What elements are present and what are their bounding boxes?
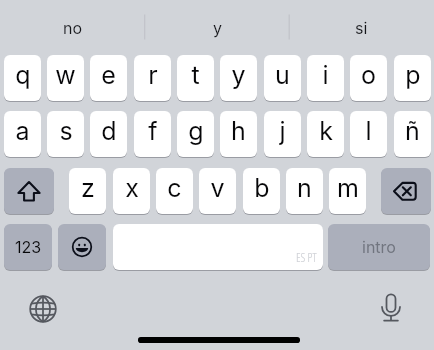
staticText: m [337,173,359,203]
button[interactable]: q [4,55,41,101]
staticText: c [167,173,182,203]
staticText: s [59,116,73,146]
staticText: ES PT [296,249,317,265]
staticText: j [279,116,286,146]
button[interactable]: Emoji [58,224,106,270]
button[interactable]: p [394,55,431,101]
staticText: r [148,60,158,90]
staticText: a [15,116,30,146]
staticText: t [191,60,200,90]
button[interactable]: Switch keyboard language [23,289,63,329]
staticText: x [125,173,139,203]
button[interactable]: y [145,0,290,47]
button[interactable]: u [264,55,301,101]
button[interactable]: si [289,0,434,47]
staticText: i [322,60,329,90]
button[interactable]: no [0,0,145,47]
button[interactable]: Enter [328,224,430,270]
button[interactable]: c [156,168,193,214]
button[interactable]: Dictation [371,289,411,329]
staticText: g [188,116,204,146]
staticText: u [275,60,290,90]
staticText: 123 [15,237,42,256]
staticText: b [254,173,270,203]
staticText: ñ [405,116,420,146]
button[interactable]: Backspace [381,168,431,214]
staticText: h [231,116,246,146]
button[interactable]: ñ [394,111,431,157]
staticText: w [55,60,76,90]
button[interactable]: g [177,111,214,157]
button[interactable]: j [264,111,301,157]
staticText: y [213,18,222,37]
staticText: f [148,116,158,146]
button[interactable]: y [220,55,257,101]
button[interactable]: k [307,111,344,157]
staticText: n [297,173,312,203]
staticText: intro [362,237,396,256]
staticText: z [81,173,95,203]
staticText: l [365,116,372,146]
button[interactable]: n [286,168,323,214]
button[interactable]: d [90,111,127,157]
button[interactable]: m [329,168,366,214]
button[interactable]: r [134,55,171,101]
button[interactable]: o [350,55,387,101]
button[interactable]: a [4,111,41,157]
staticText: q [15,60,31,90]
staticText: e [101,60,116,90]
button[interactable]: h [220,111,257,157]
button[interactable]: e [90,55,127,101]
button[interactable]: s [47,111,84,157]
staticText: d [101,116,117,146]
button[interactable]: Shift [4,168,54,214]
button[interactable]: i [307,55,344,101]
staticText: y [231,60,246,90]
button[interactable]: t [177,55,214,101]
staticText: p [405,60,421,90]
staticText: no [63,18,83,37]
button[interactable]: x [113,168,150,214]
staticText: v [210,173,225,203]
button[interactable]: Space [113,224,323,270]
button[interactable]: b [243,168,280,214]
button[interactable]: v [199,168,236,214]
staticText: k [319,116,333,146]
staticText: si [355,18,368,37]
staticText: o [361,60,376,90]
button[interactable]: z [69,168,106,214]
button[interactable]: f [134,111,171,157]
button[interactable]: l [350,111,387,157]
button[interactable]: w [47,55,84,101]
button[interactable]: Numbers [4,224,52,270]
